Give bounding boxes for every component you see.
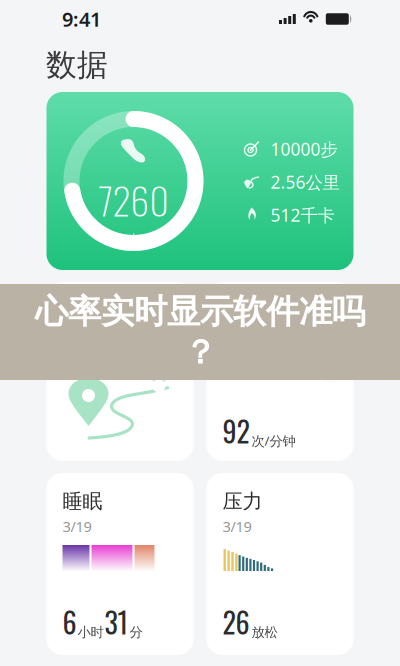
- staticText: 心率实时显示软件准吗: [35, 291, 365, 332]
- button[interactable]: 7260: [46, 92, 353, 270]
- staticText: 3/19: [62, 326, 91, 345]
- button[interactable]: 心率: [206, 282, 353, 461]
- staticText: 次/分钟: [251, 432, 295, 449]
- staticText: 运动: [62, 298, 102, 323]
- staticText: ？: [183, 332, 216, 373]
- staticText: 数据: [46, 46, 108, 84]
- staticText: 分: [129, 624, 142, 640]
- staticText: 3/19: [222, 517, 251, 536]
- staticText: 26: [222, 601, 249, 642]
- staticText: 放松: [251, 624, 277, 640]
- staticText: 31: [104, 601, 128, 642]
- staticText: 心率: [222, 298, 262, 323]
- staticText: 小时: [77, 624, 103, 640]
- staticText: 睡眠: [62, 489, 102, 514]
- button[interactable]: 睡眠: [46, 473, 193, 655]
- staticText: 10000步: [270, 137, 337, 160]
- staticText: 3/19: [222, 326, 251, 345]
- button[interactable]: 压力: [206, 473, 353, 655]
- staticText: 压力: [222, 489, 262, 514]
- staticText: 6: [62, 601, 76, 642]
- staticText: 9:41: [62, 6, 101, 32]
- staticText: 2.56公里: [270, 170, 339, 193]
- button[interactable]: 运动: [46, 282, 193, 461]
- staticText: 512千卡: [270, 203, 334, 226]
- staticText: 92: [222, 410, 249, 451]
- staticText: 7260: [98, 172, 168, 227]
- staticText: 3/19: [62, 517, 91, 536]
- staticText: 步: [126, 231, 141, 249]
